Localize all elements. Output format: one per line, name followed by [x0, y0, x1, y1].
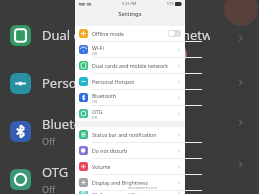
staticText: Bluetooth: [92, 92, 117, 99]
staticText: Personal Hotspot: [92, 78, 135, 85]
staticText: Personal Hotspot: [42, 74, 148, 92]
staticText: Dual cards and mobile network: [92, 62, 168, 69]
button[interactable]: Bluetooth: [75, 90, 185, 105]
staticText: Display and Brightness: [92, 179, 148, 186]
staticText: Offline mode: [92, 30, 124, 37]
button[interactable]: Bluetooth: [10, 110, 210, 152]
button[interactable]: Personal Hotspot: [75, 74, 185, 89]
staticText: Dual cards and mobile network: [42, 26, 210, 44]
staticText: •▮▮▮ •▮▮: [78, 1, 92, 6]
staticText: Off: [92, 51, 98, 56]
staticText: Settings: [118, 10, 142, 18]
staticText: Bluetooth: [42, 115, 103, 133]
staticText: 5:23 PM: [122, 1, 137, 6]
staticText: Off: [92, 115, 98, 120]
staticText: Off: [42, 135, 56, 147]
staticText: Volume: [92, 163, 111, 170]
button[interactable]: Offline mode: [75, 26, 185, 41]
button[interactable]: Wi-Fi: [75, 42, 185, 57]
button[interactable]: OTG: [75, 106, 185, 121]
staticText: Status bar and notification: [92, 131, 157, 138]
staticText: Wi-Fi: [92, 44, 104, 51]
button[interactable]: Personal Hotspot: [10, 62, 210, 104]
staticText: Wallpapers and Fonts: [92, 191, 145, 194]
staticText: OTG: [92, 108, 103, 115]
staticText: Off: [92, 99, 98, 104]
button[interactable]: Offline mode toggle: [168, 30, 181, 37]
button[interactable]: Wallpapers and Fonts: [75, 191, 185, 194]
button[interactable]: Status bar and notification: [75, 127, 185, 142]
button[interactable]: Volume: [75, 159, 185, 174]
staticText: woodwork.com: [128, 185, 157, 190]
staticText: Do not disturb: [92, 147, 128, 154]
button[interactable]: Do not disturb: [75, 143, 185, 158]
staticText: OTG: [42, 163, 69, 181]
button[interactable]: OTG: [10, 158, 210, 194]
button[interactable]: Display and Brightness: [75, 175, 185, 190]
button[interactable]: Dual cards and mobile network: [10, 14, 210, 56]
staticText: Off: [42, 183, 56, 194]
button[interactable]: Dual cards and mobile network: [75, 58, 185, 73]
staticText: 57%: [167, 1, 174, 6]
